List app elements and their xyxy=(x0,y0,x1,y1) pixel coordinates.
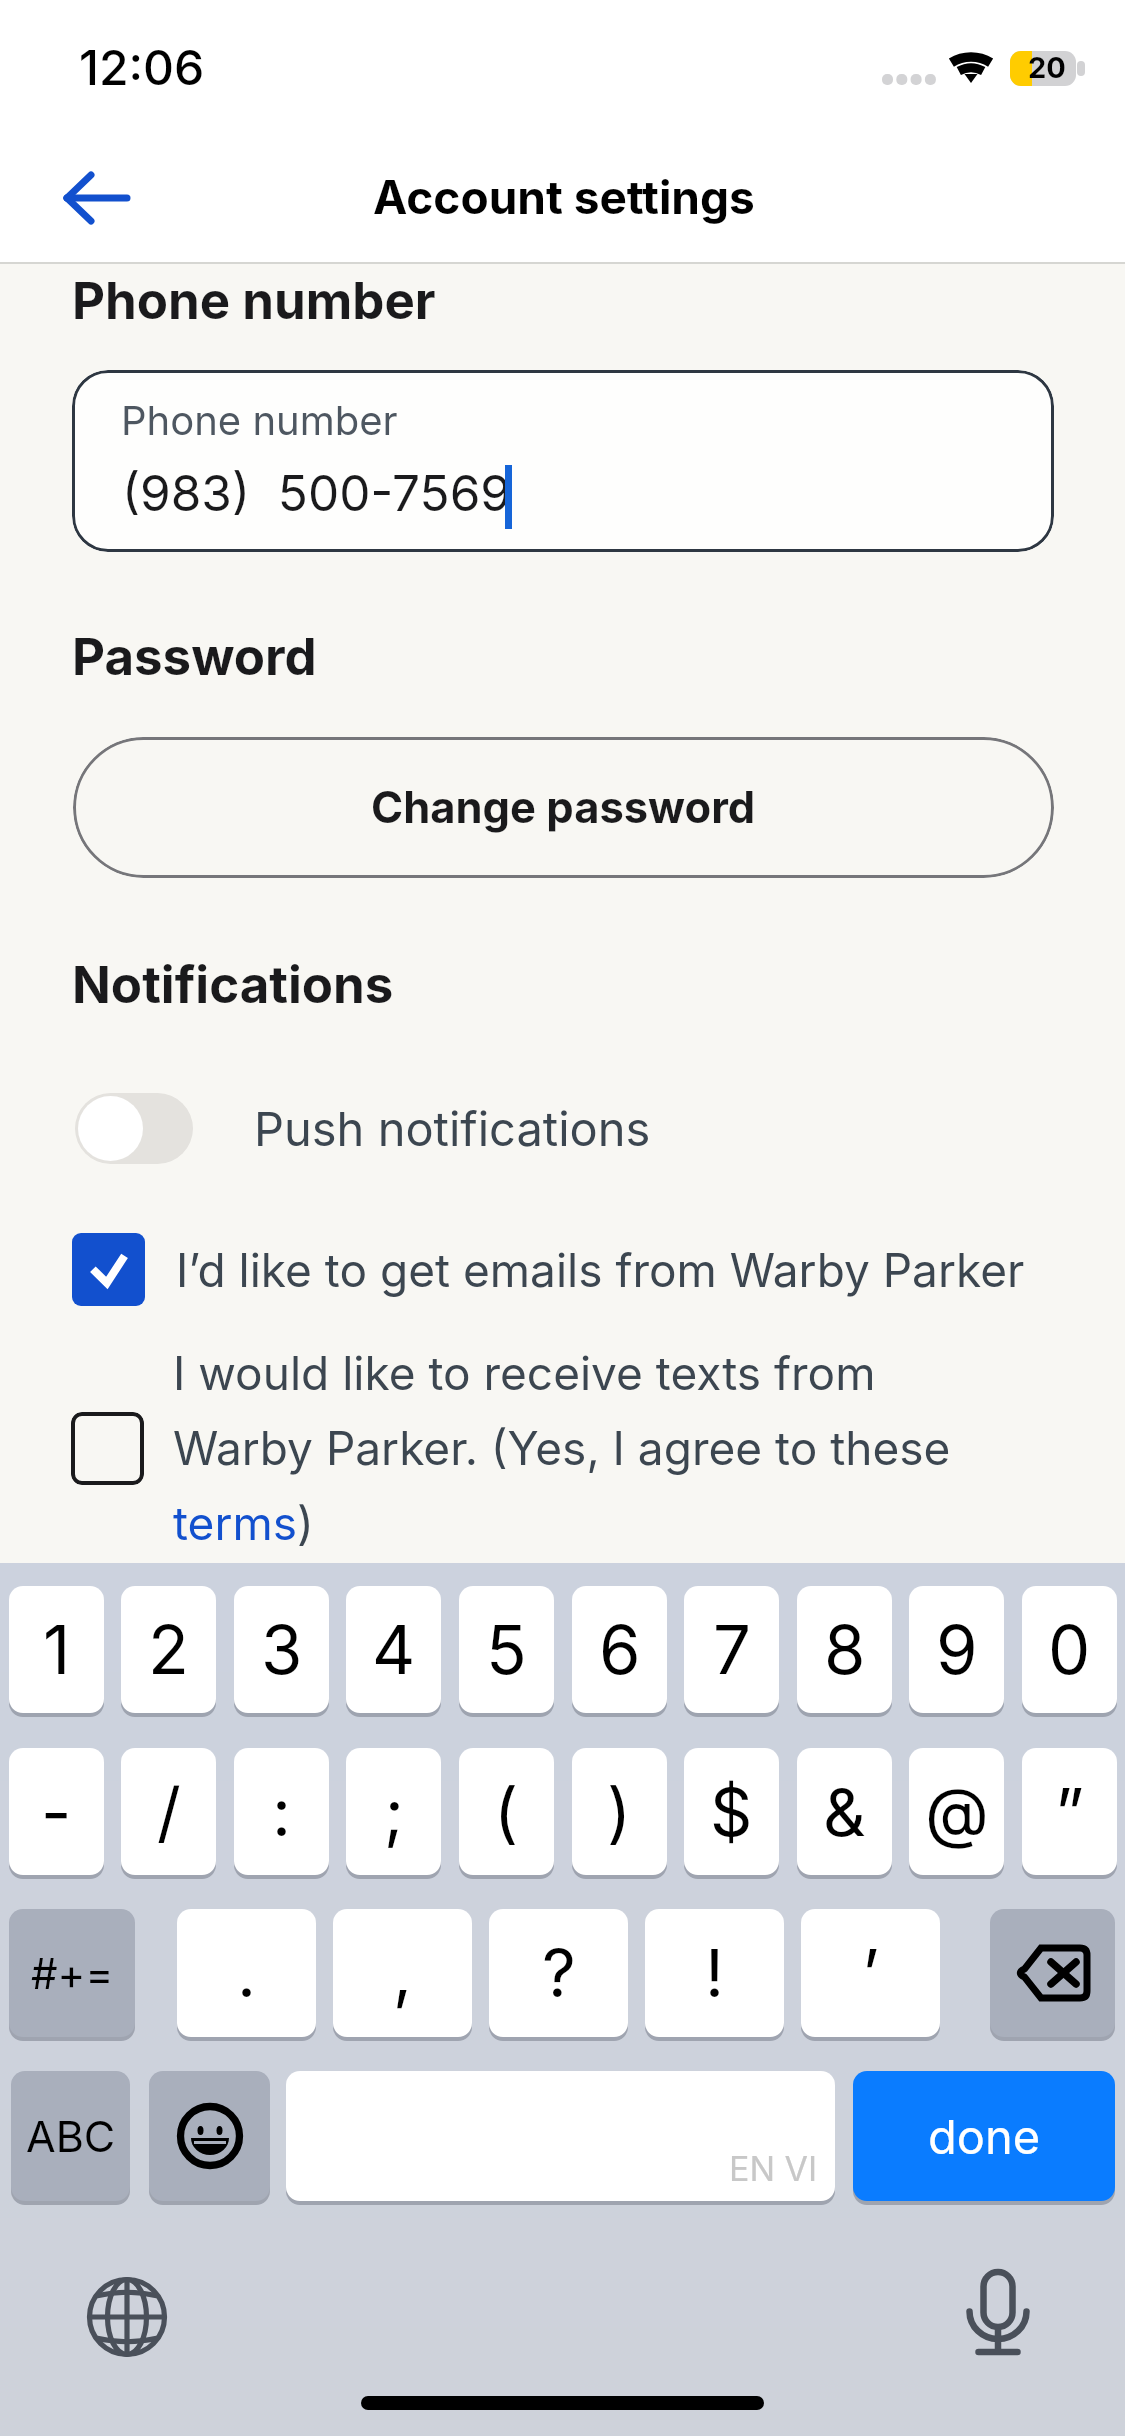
staticText: 4 xyxy=(372,1609,416,1690)
staticText: $ xyxy=(710,1772,753,1852)
button[interactable]: , xyxy=(333,1909,472,2037)
staticText: 7 xyxy=(713,1609,751,1690)
button[interactable]: 9 xyxy=(909,1586,1004,1713)
button[interactable]: ; xyxy=(346,1748,441,1875)
staticText: I would like to receive texts from Warby… xyxy=(173,1345,973,1551)
button[interactable]: 5 xyxy=(459,1586,554,1713)
staticText: done xyxy=(928,2108,1041,2165)
staticText: . xyxy=(237,1933,257,2013)
staticText: , xyxy=(393,1933,413,2013)
staticText: ( xyxy=(494,1772,519,1852)
staticText: 3 xyxy=(261,1609,303,1690)
button[interactable]: Phone number xyxy=(72,370,1054,552)
button[interactable]: Change keyboard xyxy=(86,2276,168,2358)
button[interactable]: $ xyxy=(684,1748,779,1875)
staticText: ; xyxy=(384,1772,404,1852)
button[interactable]: 4 xyxy=(346,1586,441,1713)
staticText: EN VI xyxy=(729,2148,818,2189)
button[interactable]: Space xyxy=(286,2071,835,2201)
button[interactable]: Back xyxy=(28,141,164,255)
button[interactable]: 6 xyxy=(572,1586,667,1713)
button[interactable]: ) xyxy=(572,1748,667,1875)
staticText: Push notifications xyxy=(254,1100,651,1157)
staticText: Phone number xyxy=(121,396,398,444)
staticText: 6 xyxy=(599,1609,641,1690)
staticText: 5 xyxy=(486,1609,527,1690)
staticText: (983) 500-7569 xyxy=(122,463,512,523)
staticText: #+= xyxy=(31,1948,114,1999)
button[interactable]: 3 xyxy=(234,1586,329,1713)
staticText: ? xyxy=(542,1933,576,2013)
button[interactable]: . xyxy=(177,1909,316,2037)
staticText: 12:06 xyxy=(79,38,205,96)
staticText: 8 xyxy=(824,1609,866,1690)
button[interactable]: #+= xyxy=(9,1909,135,2037)
staticText: & xyxy=(823,1772,866,1852)
button[interactable]: @ xyxy=(909,1748,1004,1875)
staticText: 9 xyxy=(936,1609,978,1690)
button[interactable]: ! xyxy=(645,1909,784,2037)
button[interactable]: / xyxy=(121,1748,216,1875)
button[interactable]: 0 xyxy=(1022,1586,1117,1713)
button[interactable]: 8 xyxy=(797,1586,892,1713)
button[interactable]: Change password xyxy=(73,737,1054,878)
staticText: Change password xyxy=(371,781,756,834)
staticText: ” xyxy=(1055,1772,1085,1852)
staticText: 0 xyxy=(1048,1609,1091,1690)
button[interactable]: Backspace xyxy=(990,1909,1115,2037)
button[interactable]: Push notifications xyxy=(60,1076,780,1180)
staticText: / xyxy=(157,1772,181,1852)
staticText: 1 xyxy=(43,1609,71,1690)
button[interactable]: Emoji xyxy=(149,2071,270,2201)
staticText: Account settings xyxy=(373,169,755,225)
staticText: ! xyxy=(705,1933,724,2013)
button[interactable]: ABC xyxy=(11,2071,130,2201)
button[interactable]: & xyxy=(797,1748,892,1875)
staticText: ) xyxy=(607,1772,632,1852)
staticText: I’d like to get emails from Warby Parker xyxy=(176,1242,1025,1298)
button[interactable]: 1 xyxy=(9,1586,104,1713)
staticText: Notifications xyxy=(72,954,394,1016)
button[interactable]: 2 xyxy=(121,1586,216,1713)
button[interactable]: ? xyxy=(489,1909,628,2037)
button[interactable]: Dictate xyxy=(958,2268,1038,2360)
staticText: Phone number xyxy=(72,270,436,332)
button[interactable]: ( xyxy=(459,1748,554,1875)
staticText: 2 xyxy=(148,1609,189,1690)
button[interactable]: I’d like to get emails from Warby Parker xyxy=(56,1219,1066,1320)
staticText: Password xyxy=(72,626,317,688)
staticText: ABC xyxy=(26,2110,116,2162)
button[interactable]: ’ xyxy=(801,1909,940,2037)
staticText: : xyxy=(272,1772,292,1852)
button[interactable]: : xyxy=(234,1748,329,1875)
staticText: - xyxy=(41,1772,72,1852)
button[interactable]: ” xyxy=(1022,1748,1117,1875)
button[interactable]: 7 xyxy=(684,1586,779,1713)
staticText: 20 xyxy=(1028,51,1066,85)
button[interactable]: - xyxy=(9,1748,104,1875)
staticText: ’ xyxy=(862,1933,880,2013)
button[interactable]: done xyxy=(853,2071,1115,2201)
staticText: @ xyxy=(925,1772,989,1852)
button[interactable]: I would like to receive texts from Warby… xyxy=(56,1334,1066,1562)
